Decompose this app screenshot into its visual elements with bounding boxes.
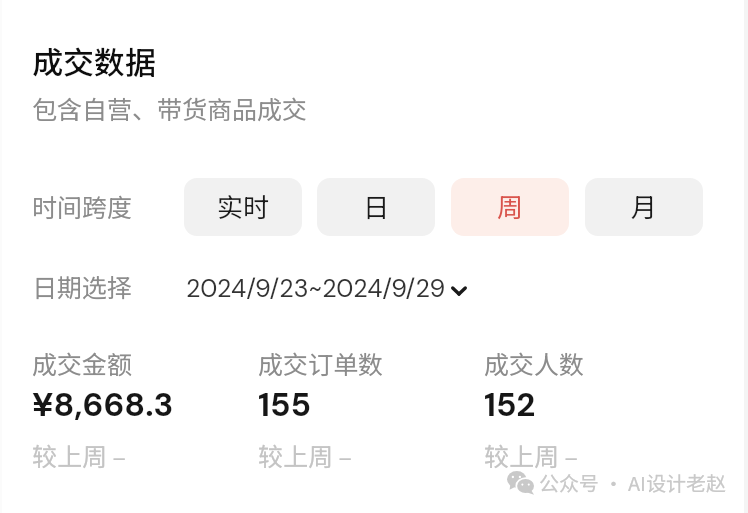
staticText: 月 [631,187,658,225]
button[interactable]: 周 [451,178,569,236]
staticText: 包含自营、带货商品成交 [32,90,308,126]
staticText: 实时 [217,187,270,225]
staticText: 成交订单数 [258,345,384,381]
staticText: 成交金额 [32,345,133,381]
staticText: ¥8,668.3 [32,383,174,426]
staticText: 155 [258,383,312,426]
staticText: 日 [363,187,390,225]
staticText: 公众号 · AI设计老赵 [539,468,726,497]
staticText: 成交数据 [32,38,156,83]
staticText: 2024/9/23~2024/9/29 [186,272,446,305]
staticText: 日期选择 [32,268,133,304]
staticText: 时间跨度 [32,188,133,224]
staticText: 较上周 – [258,437,353,473]
staticText: 成交人数 [484,345,585,381]
staticText: 较上周 – [484,437,579,473]
button[interactable]: 月 [585,178,703,236]
other: Change date range [451,287,467,295]
staticText: 152 [484,383,536,426]
button[interactable]: 日 [317,178,435,236]
staticText: 较上周 – [32,437,127,473]
button[interactable]: 2024/9/23~2024/9/29 [186,272,446,305]
button[interactable]: 实时 [184,178,302,236]
staticText: 周 [497,187,524,225]
